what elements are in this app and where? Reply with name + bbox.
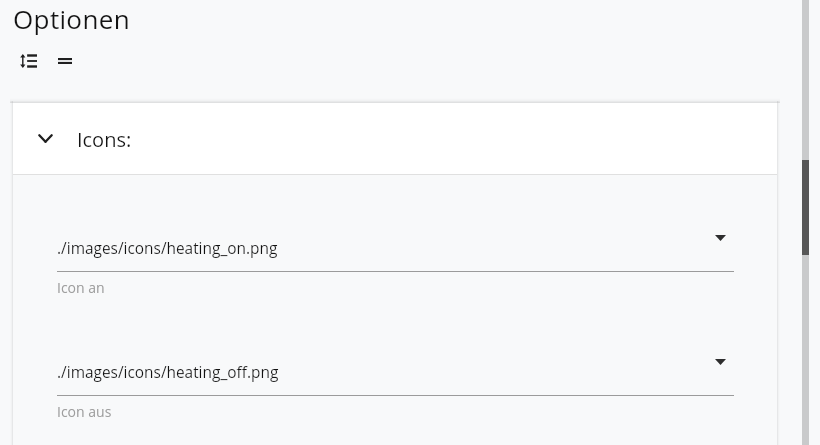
other: Open list: [715, 359, 726, 365]
staticText: Icon an: [57, 278, 105, 297]
button[interactable]: Line spacing: [14, 49, 42, 73]
button[interactable]: ./images/icons/heating_off.png: [56, 362, 746, 422]
staticText: ./images/icons/heating_on.png: [57, 238, 278, 259]
staticText: Icons:: [77, 126, 132, 153]
button[interactable]: ./images/icons/heating_on.png: [56, 238, 746, 298]
staticText: Icon aus: [57, 402, 112, 421]
button[interactable]: Menu: [52, 49, 78, 73]
other: Open list: [715, 235, 726, 241]
button[interactable]: Icons:: [13, 103, 777, 174]
staticText: ./images/icons/heating_off.png: [57, 362, 279, 383]
staticText: Optionen: [13, 1, 130, 36]
